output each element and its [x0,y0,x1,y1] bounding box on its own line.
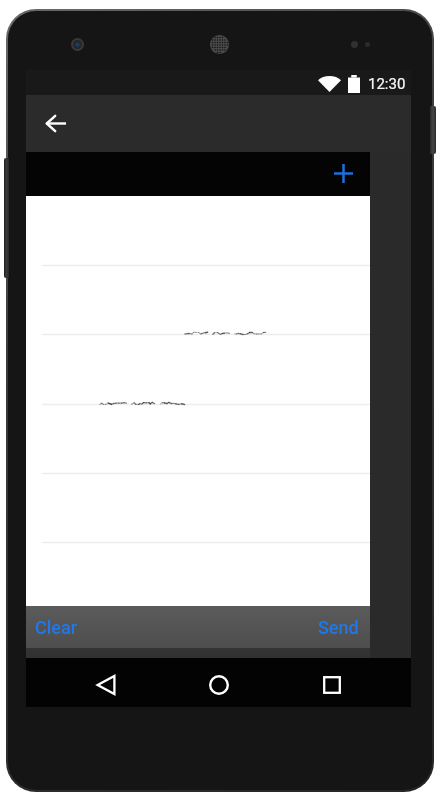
button[interactable]: Navigate up [36,104,76,144]
button[interactable]: Add [326,157,360,191]
button[interactable]: Send [307,609,370,646]
staticText: Clear [35,617,78,638]
button[interactable]: Back [70,658,142,707]
staticText: 12:30 [368,75,406,93]
staticText: Send [318,617,359,638]
button[interactable]: Clear [26,609,89,646]
button[interactable]: Home [183,658,255,707]
button[interactable]: Recent apps [296,658,368,707]
